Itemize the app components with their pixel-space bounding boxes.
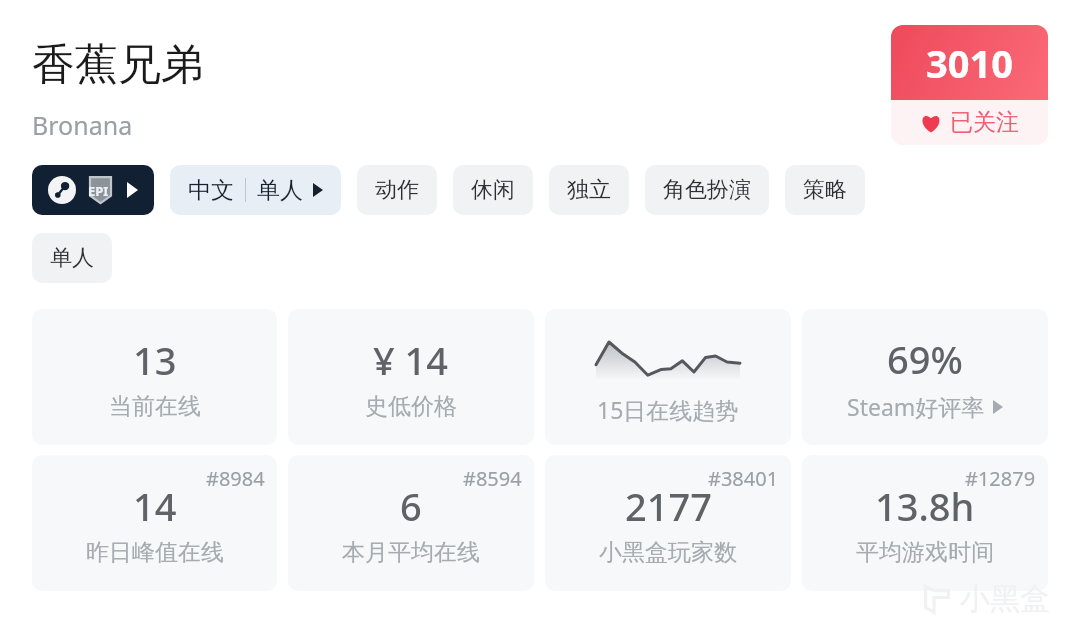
button[interactable]: #12879 (802, 455, 1048, 591)
staticText: 平均游戏时间 (856, 538, 994, 567)
staticText: 6 (400, 480, 422, 532)
staticText: 当前在线 (109, 392, 201, 421)
staticText: 小黑盒玩家数 (599, 538, 737, 567)
staticText: #8594 (463, 465, 522, 492)
staticText: #8984 (206, 465, 265, 492)
button[interactable]: #38401 (545, 455, 791, 591)
button[interactable]: 69% (802, 309, 1048, 445)
button[interactable]: #8984 (32, 455, 277, 591)
staticText: #12879 (965, 465, 1036, 492)
staticText: 中文 (188, 176, 234, 205)
staticText: 69% (887, 333, 963, 385)
button[interactable]: 已关注 (891, 25, 1048, 145)
staticText: 已关注 (950, 108, 1019, 137)
staticText: 香蕉兄弟 (32, 38, 204, 92)
staticText: 史低价格 (365, 392, 457, 421)
staticText: 3010 (926, 37, 1013, 89)
staticText: 小黑盒 (960, 580, 1050, 618)
staticText: 2177 (625, 480, 712, 532)
button[interactable]: 策略 (785, 165, 865, 215)
button[interactable]: ¥ 14 (288, 309, 534, 445)
staticText: 动作 (375, 176, 419, 204)
button[interactable]: 单人 (32, 233, 112, 283)
button[interactable]: 13 (32, 309, 277, 445)
staticText: 13.8h (875, 480, 975, 532)
staticText: 本月平均在线 (342, 538, 480, 567)
staticText: 单人 (257, 176, 303, 205)
button[interactable]: 动作 (357, 165, 437, 215)
staticText: #38401 (708, 465, 779, 492)
staticText: 休闲 (471, 176, 515, 204)
staticText: Steam好评率 (847, 391, 985, 422)
staticText: 单人 (50, 244, 94, 272)
staticText: EPIC (88, 182, 113, 204)
button[interactable]: 15日在线趋势 (545, 309, 791, 445)
staticText: 13 (133, 334, 177, 386)
staticText: 14 (133, 480, 177, 532)
staticText: Bronana (32, 108, 133, 142)
button[interactable]: 中文 (170, 165, 341, 215)
staticText: 策略 (803, 176, 847, 204)
staticText: 角色扮演 (663, 176, 751, 204)
staticText: 15日在线趋势 (597, 394, 739, 425)
staticText: 独立 (567, 176, 611, 204)
button[interactable]: 角色扮演 (645, 165, 769, 215)
staticText: ¥ 14 (373, 334, 449, 386)
button[interactable]: 平台 Steam Epic (32, 165, 154, 215)
button[interactable]: 休闲 (453, 165, 533, 215)
button[interactable]: #8594 (288, 455, 534, 591)
staticText: 昨日峰值在线 (86, 538, 224, 567)
button[interactable]: 独立 (549, 165, 629, 215)
